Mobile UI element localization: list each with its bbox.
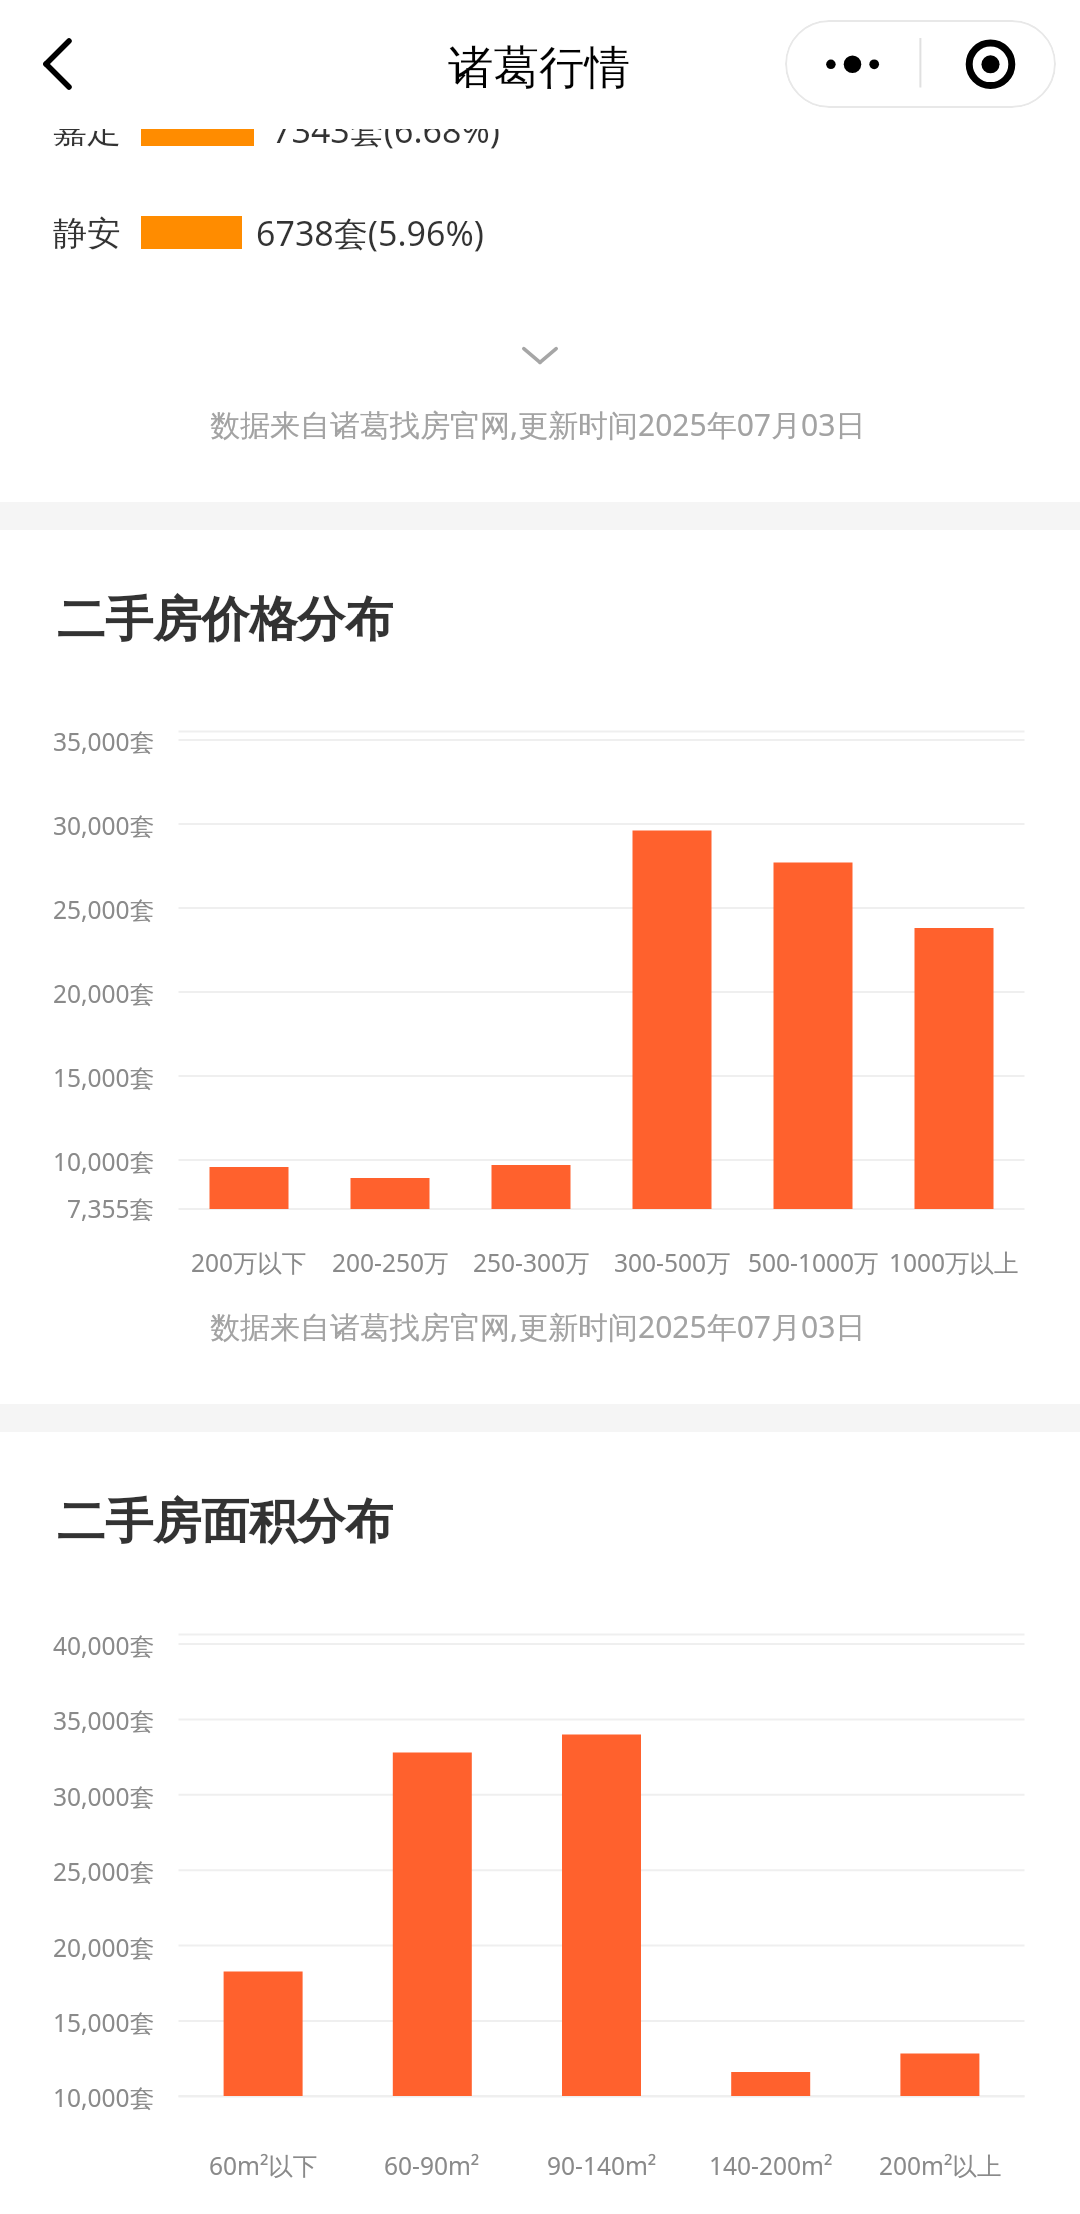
staticText: 数据来自诸葛找房官网,更新时间2025年07月03日 (210, 404, 866, 445)
staticText: 7343套(6.68%) (272, 107, 500, 153)
staticText: 140-200m² (709, 2149, 833, 2182)
staticText: 60-90m² (384, 2149, 480, 2182)
staticText: 25,000套 (53, 1855, 155, 1888)
staticText: 200m²以上 (879, 2149, 1002, 2182)
staticText: 25,000套 (53, 893, 155, 926)
staticText: 60m²以下 (209, 2149, 318, 2182)
staticText: 250-300万 (473, 1246, 590, 1279)
staticText: 二手房面积分布 (57, 1492, 393, 1552)
staticText: 7,355套 (67, 1192, 155, 1225)
staticText: 数据来自诸葛找房官网,更新时间2025年07月03日 (210, 1306, 866, 1347)
staticText: 40,000套 (53, 1629, 155, 1662)
staticText: 35,000套 (53, 1704, 155, 1737)
staticText: 30,000套 (53, 1780, 155, 1813)
staticText: 90-140m² (547, 2149, 657, 2182)
staticText: 200万以下 (191, 1246, 307, 1279)
staticText: 10,000套 (53, 1145, 155, 1178)
staticText: 500-1000万 (748, 1246, 879, 1279)
staticText: 15,000套 (53, 2006, 155, 2039)
staticText: 诸葛行情 (448, 39, 630, 96)
staticText: 二手房价格分布 (57, 590, 393, 650)
button[interactable]: 展开更多 (470, 320, 610, 390)
staticText: 1000万以上 (889, 1246, 1019, 1279)
staticText: 35,000套 (53, 725, 155, 758)
staticText: 嘉定 (53, 109, 121, 152)
button[interactable]: 更多菜单 (785, 20, 1056, 108)
button[interactable]: 返回 (12, 14, 94, 96)
staticText: 10,000套 (53, 2081, 155, 2114)
staticText: 300-500万 (614, 1246, 731, 1279)
staticText: 15,000套 (53, 1061, 155, 1094)
staticText: 6738套(5.96%) (256, 210, 484, 256)
staticText: 30,000套 (53, 809, 155, 842)
staticText: 20,000套 (53, 977, 155, 1010)
staticText: 200-250万 (332, 1246, 449, 1279)
staticText: 静安 (53, 212, 121, 255)
staticText: 20,000套 (53, 1931, 155, 1964)
